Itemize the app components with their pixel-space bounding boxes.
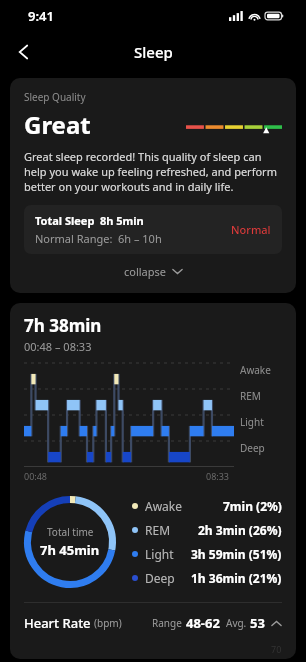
staticText: 6h – 10h	[118, 231, 162, 246]
button[interactable]: Deep	[132, 566, 282, 590]
button[interactable]: Awake	[132, 494, 282, 518]
staticText: Normal Range:	[35, 231, 113, 246]
button[interactable]: Back	[6, 34, 42, 70]
staticText: Range	[152, 616, 182, 630]
staticText: Total time	[47, 525, 94, 539]
staticText: Total Sleep	[35, 213, 95, 228]
staticText: Light	[145, 546, 174, 562]
staticText: 9:41	[28, 7, 54, 25]
staticText: Heart Rate	[24, 614, 91, 632]
staticText: Sleep Quality	[24, 90, 86, 104]
staticText: Sleep	[134, 42, 173, 62]
staticText: collapse	[124, 264, 167, 279]
button[interactable]: Heart Rate	[24, 603, 282, 643]
staticText: REM	[145, 522, 171, 538]
staticText: 00:48	[24, 470, 48, 482]
staticText: 53	[250, 614, 265, 632]
staticText: 48-62	[186, 614, 220, 632]
staticText: (bpm)	[94, 616, 122, 630]
staticText: Great sleep recorded! This quality of sl…	[24, 149, 282, 194]
button[interactable]: REM	[132, 518, 282, 542]
staticText: 00:48 – 08:33	[24, 339, 92, 354]
staticText: Deep	[145, 570, 175, 586]
staticText: 08:33	[206, 470, 230, 482]
staticText: Awake	[145, 498, 183, 514]
staticText: 3h 59min (51%)	[191, 546, 282, 562]
staticText: Deep	[240, 441, 265, 455]
staticText: 8h 5min	[100, 213, 144, 228]
staticText: Avg.	[226, 616, 247, 630]
button[interactable]: Light	[132, 542, 282, 566]
staticText: Great	[24, 108, 91, 141]
staticText: 7h 38min	[24, 314, 102, 337]
staticText: 70	[271, 643, 282, 655]
staticText: 7min (2%)	[223, 498, 282, 514]
staticText: 2h 3min (26%)	[198, 522, 282, 538]
staticText: Normal	[231, 222, 271, 237]
staticText: Awake	[240, 363, 271, 377]
staticText: 7h 45min	[40, 541, 100, 559]
button[interactable]: collapse	[24, 260, 282, 283]
staticText: 1h 36min (21%)	[191, 570, 282, 586]
staticText: REM	[240, 389, 261, 403]
staticText: Light	[240, 415, 264, 429]
